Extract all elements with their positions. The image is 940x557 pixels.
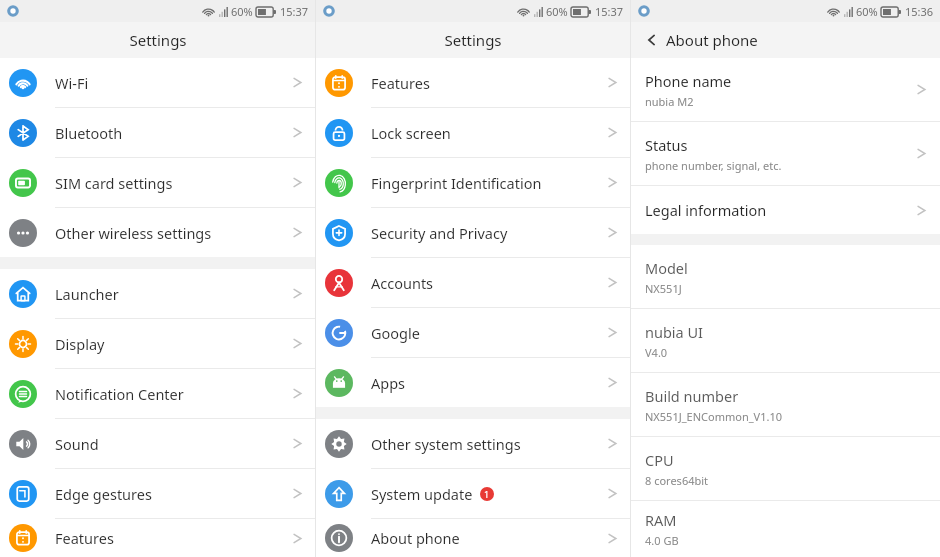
button[interactable]: Legal information	[631, 186, 940, 234]
button[interactable]: Google	[316, 308, 630, 358]
staticText: Bluetooth	[55, 123, 123, 143]
staticText: Other wireless settings	[55, 223, 212, 243]
button[interactable]: Launcher	[0, 269, 315, 319]
button[interactable]: Features	[0, 519, 315, 557]
button[interactable]: Wi-Fi	[0, 58, 315, 108]
button[interactable]: SIM card settings	[0, 158, 315, 208]
staticText: 1	[484, 488, 490, 500]
staticText: V4.0	[645, 345, 668, 360]
staticText: Features	[55, 528, 114, 548]
button[interactable]: Notification Center	[0, 369, 315, 419]
button[interactable]: Phone name	[631, 58, 940, 122]
staticText: Wi-Fi	[55, 73, 89, 93]
staticText: About phone	[666, 30, 758, 50]
button[interactable]: Accounts	[316, 258, 630, 308]
staticText: Accounts	[371, 273, 434, 293]
staticText: 15:37	[595, 4, 624, 19]
staticText: Apps	[371, 373, 406, 393]
staticText: Fingerprint Identification	[371, 173, 542, 193]
staticText: nubia M2	[645, 94, 694, 109]
button[interactable]: Fingerprint Identification	[316, 158, 630, 208]
button[interactable]: Other wireless settings	[0, 208, 315, 257]
button[interactable]: Bluetooth	[0, 108, 315, 158]
staticText: 4.0 GB	[645, 533, 679, 548]
staticText: Settings	[444, 30, 502, 50]
button[interactable]: About phone	[316, 519, 630, 557]
staticText: Display	[55, 334, 105, 354]
staticText: 60%	[546, 4, 568, 19]
staticText: Security and Privacy	[371, 223, 508, 243]
button[interactable]: Lock screen	[316, 108, 630, 158]
staticText: Settings	[129, 30, 187, 50]
staticText: Launcher	[55, 284, 119, 304]
staticText: 60%	[231, 4, 253, 19]
staticText: System update	[371, 484, 473, 504]
staticText: Sound	[55, 434, 99, 454]
staticText: Phone name	[645, 71, 732, 91]
staticText: 15:37	[280, 4, 309, 19]
button[interactable]: Apps	[316, 358, 630, 407]
staticText: Status	[645, 135, 688, 155]
staticText: Legal information	[645, 200, 767, 220]
staticText: About phone	[371, 528, 460, 548]
staticText: RAM	[645, 510, 677, 530]
staticText: Model	[645, 258, 688, 278]
staticText: CPU	[645, 450, 674, 470]
button[interactable]: Status	[631, 122, 940, 186]
staticText: Edge gestures	[55, 484, 152, 504]
button[interactable]: Back	[643, 31, 661, 49]
staticText: Notification Center	[55, 384, 184, 404]
button[interactable]: Features	[316, 58, 630, 108]
staticText: 8 cores64bit	[645, 473, 709, 488]
staticText: Google	[371, 323, 420, 343]
staticText: Build number	[645, 386, 739, 406]
button[interactable]: Sound	[0, 419, 315, 469]
button[interactable]: Display	[0, 319, 315, 369]
staticText: nubia UI	[645, 322, 703, 342]
button[interactable]: Security and Privacy	[316, 208, 630, 258]
staticText: Features	[371, 73, 430, 93]
button[interactable]: System update	[316, 469, 630, 519]
staticText: 60%	[856, 4, 878, 19]
staticText: Other system settings	[371, 434, 521, 454]
staticText: 15:36	[905, 4, 934, 19]
staticText: Lock screen	[371, 123, 451, 143]
button[interactable]: Other system settings	[316, 419, 630, 469]
staticText: NX551J_ENCommon_V1.10	[645, 409, 782, 424]
button[interactable]: Edge gestures	[0, 469, 315, 519]
staticText: NX551J	[645, 281, 682, 296]
staticText: phone number, signal, etc.	[645, 158, 782, 173]
staticText: SIM card settings	[55, 173, 173, 193]
